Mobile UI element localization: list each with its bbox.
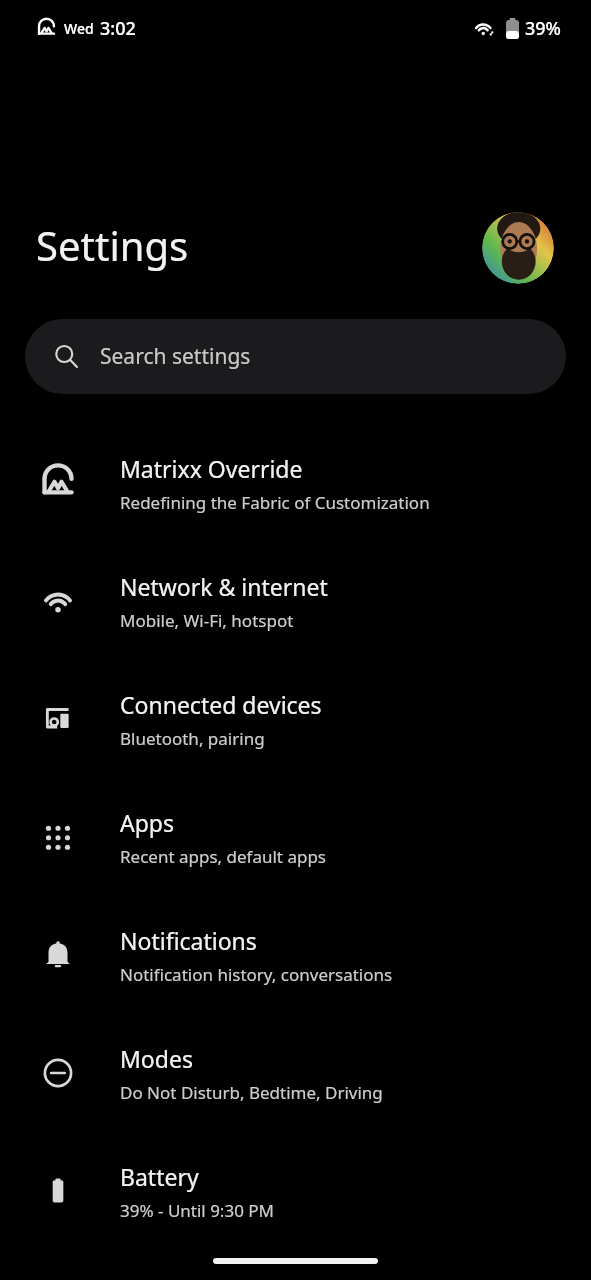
staticText: Bluetooth, pairing: [120, 727, 265, 750]
button[interactable]: Connected devices: [0, 660, 591, 778]
staticText: Connected devices: [120, 689, 322, 720]
staticText: Network & internet: [120, 571, 328, 602]
staticText: Search settings: [100, 342, 251, 371]
staticText: Wed: [64, 19, 94, 38]
button[interactable]: Network & internet: [0, 542, 591, 660]
staticText: Battery: [120, 1161, 199, 1192]
staticText: 39% - Until 9:30 PM: [120, 1199, 275, 1222]
button[interactable]: Search settings: [25, 319, 566, 394]
staticText: 3:02: [100, 16, 136, 41]
staticText: Settings: [36, 218, 189, 272]
staticText: Modes: [120, 1043, 193, 1074]
button[interactable]: Battery: [0, 1132, 591, 1250]
button[interactable]: Notifications: [0, 896, 591, 1014]
staticText: Apps: [120, 807, 175, 838]
staticText: Mobile, Wi-Fi, hotspot: [120, 609, 294, 632]
staticText: 39%: [525, 16, 561, 41]
staticText: Notification history, conversations: [120, 963, 393, 986]
button[interactable]: Matrixx Override: [0, 424, 591, 542]
staticText: Notifications: [120, 925, 257, 956]
staticText: Recent apps, default apps: [120, 845, 327, 868]
staticText: Redefining the Fabric of Customization: [120, 491, 430, 514]
button[interactable]: Apps: [0, 778, 591, 896]
staticText: Matrixx Override: [120, 453, 303, 484]
button[interactable]: Account avatar: [482, 212, 554, 284]
button[interactable]: Modes: [0, 1014, 591, 1132]
staticText: Do Not Disturb, Bedtime, Driving: [120, 1081, 383, 1104]
